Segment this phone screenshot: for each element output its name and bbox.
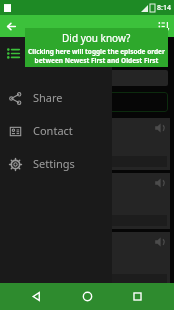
button[interactable]: Sort order bbox=[152, 15, 174, 37]
button[interactable]: Back bbox=[0, 15, 22, 37]
staticText: Settings bbox=[33, 156, 75, 171]
staticText: Share bbox=[33, 90, 63, 105]
staticText: Contact bbox=[33, 123, 73, 138]
button[interactable]: nload bbox=[7, 156, 167, 167]
staticText: 8:14 bbox=[157, 3, 171, 13]
button[interactable]: Settings bbox=[0, 147, 112, 180]
button[interactable]: Did you know? bbox=[25, 28, 168, 67]
button[interactable]: g Novels bbox=[4, 232, 170, 288]
button[interactable]: Share bbox=[0, 81, 112, 114]
button[interactable]: Contact bbox=[0, 114, 112, 147]
button[interactable]: nload bbox=[4, 118, 170, 170]
staticText: Did you know? bbox=[62, 31, 131, 45]
staticText: Clicking here will toggle the episode or… bbox=[28, 47, 165, 65]
button[interactable]: Played bbox=[6, 92, 168, 112]
button[interactable]: Recents bbox=[124, 283, 151, 310]
button[interactable]: Home bbox=[74, 283, 101, 310]
button[interactable]: nload bbox=[7, 274, 167, 285]
staticText: nload bbox=[78, 275, 97, 285]
button[interactable]: Back bbox=[23, 283, 50, 310]
button[interactable]: ow 31 bbox=[4, 173, 170, 229]
